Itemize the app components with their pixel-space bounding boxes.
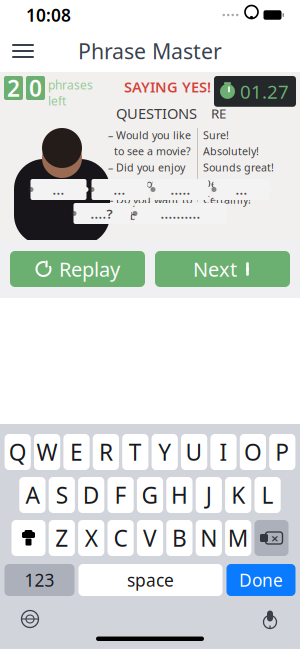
staticText: R <box>99 437 113 467</box>
staticText: K <box>231 480 245 510</box>
staticText: Certainly! <box>203 193 251 207</box>
button[interactable]: J <box>196 477 222 513</box>
staticText: ... <box>113 181 125 198</box>
staticText: N <box>200 523 217 553</box>
button[interactable]: D <box>78 477 104 513</box>
staticText: 2 <box>7 73 20 103</box>
staticText: Sure! <box>203 128 229 142</box>
staticText: 10:08 <box>26 3 71 26</box>
staticText: 0 <box>29 73 42 103</box>
staticText: .......... <box>160 205 200 222</box>
button[interactable]: Q <box>5 434 31 470</box>
button[interactable]: O <box>240 434 266 470</box>
button[interactable]: Delete <box>254 520 288 556</box>
staticText: – Would you like <box>108 128 191 142</box>
button[interactable]: R <box>93 434 119 470</box>
staticText: A <box>25 480 39 510</box>
staticText: H <box>171 480 188 510</box>
staticText: Y <box>158 437 171 467</box>
staticText: Next <box>193 256 237 282</box>
staticText: B <box>172 523 187 553</box>
staticText: I <box>219 437 227 467</box>
staticText: Absolutely! <box>203 144 259 158</box>
staticText: V <box>143 523 157 553</box>
button[interactable]: F <box>107 477 134 513</box>
button[interactable]: H <box>166 477 192 513</box>
staticText: ... <box>52 181 64 198</box>
staticText: L <box>262 480 274 510</box>
button[interactable]: C <box>107 520 134 556</box>
button[interactable]: space <box>78 564 222 596</box>
button[interactable]: T <box>122 434 148 470</box>
button[interactable]: I <box>210 434 237 470</box>
staticText: W <box>37 437 58 467</box>
button[interactable]: Dictate <box>250 602 290 636</box>
staticText: ..... <box>170 181 190 198</box>
staticText: SAYING YES! <box>124 77 211 96</box>
button[interactable]: N <box>196 520 222 556</box>
staticText: Replay <box>59 256 120 282</box>
button[interactable]: Done <box>226 564 295 596</box>
staticText: × <box>271 529 279 547</box>
staticText: O <box>244 437 262 467</box>
staticText: QUESTIONS <box>116 103 197 123</box>
button[interactable]: Y <box>152 434 178 470</box>
staticText: 123 <box>24 568 54 591</box>
staticText: S <box>56 480 68 510</box>
staticText: P <box>275 437 289 467</box>
button[interactable]: Next <box>155 251 290 287</box>
button[interactable]: E <box>63 434 90 470</box>
button[interactable]: Replay <box>10 251 145 287</box>
button[interactable]: A <box>19 477 45 513</box>
button[interactable]: L <box>254 477 281 513</box>
staticText: Q <box>9 437 27 467</box>
staticText: J <box>206 480 212 510</box>
staticText: RE <box>211 104 226 122</box>
button[interactable]: M <box>225 520 251 556</box>
button[interactable]: Next keyboard <box>10 602 50 636</box>
button[interactable]: U <box>181 434 207 470</box>
staticText: the show? <box>108 176 166 191</box>
staticText: go bowling? <box>108 209 176 223</box>
button[interactable]: P <box>269 434 295 470</box>
button[interactable]: B <box>166 520 192 556</box>
staticText: Phrase Master <box>78 37 222 65</box>
button[interactable]: G <box>137 477 163 513</box>
staticText: – Did you enjoy <box>108 160 185 174</box>
button[interactable]: 123 <box>4 564 74 596</box>
staticText: to see a movie? <box>108 144 191 158</box>
staticText: Sounds great! <box>203 160 274 174</box>
button[interactable]: Menu <box>0 30 46 72</box>
button[interactable]: V <box>137 520 163 556</box>
staticText: Done <box>239 568 283 591</box>
staticText: 01.27 <box>240 79 289 104</box>
staticText: phrases <box>48 77 93 93</box>
button[interactable]: X <box>78 520 104 556</box>
staticText: C <box>114 523 128 553</box>
staticText: ... <box>235 181 247 198</box>
staticText: X <box>85 523 98 553</box>
staticText: T <box>129 437 142 467</box>
staticText: space <box>127 568 174 591</box>
button[interactable]: Shift <box>11 520 45 556</box>
button[interactable]: Z <box>49 520 75 556</box>
staticText: F <box>115 480 127 510</box>
staticText: E <box>70 437 83 467</box>
staticText: Z <box>55 523 68 553</box>
staticText: – Do you want to <box>108 193 192 207</box>
staticText: Definitely! <box>203 176 254 191</box>
button[interactable]: S <box>49 477 75 513</box>
staticText: U <box>186 437 203 467</box>
button[interactable]: W <box>34 434 60 470</box>
staticText: M <box>228 523 249 553</box>
staticText: ....? <box>90 205 112 222</box>
button[interactable]: K <box>225 477 251 513</box>
staticText: left <box>48 93 66 109</box>
staticText: D <box>83 480 100 510</box>
staticText: G <box>141 480 158 510</box>
